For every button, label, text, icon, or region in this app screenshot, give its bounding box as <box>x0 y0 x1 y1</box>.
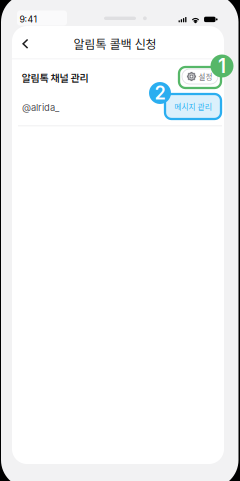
button[interactable]: 메시지 관리 <box>165 94 221 119</box>
button[interactable]: Back <box>15 33 35 55</box>
staticText: 설정 <box>199 71 213 82</box>
staticText: 메시지 관리 <box>174 101 211 112</box>
button[interactable]: 설정 <box>182 69 218 84</box>
staticText: 알림톡 채널 관리 <box>21 70 88 85</box>
staticText: 9:41 <box>19 14 37 25</box>
staticText: 알림톡 콜백 신청 <box>73 35 156 52</box>
staticText: 2 <box>154 82 165 104</box>
staticText: 1 <box>218 54 226 77</box>
staticText: @alrida_ <box>22 102 59 113</box>
